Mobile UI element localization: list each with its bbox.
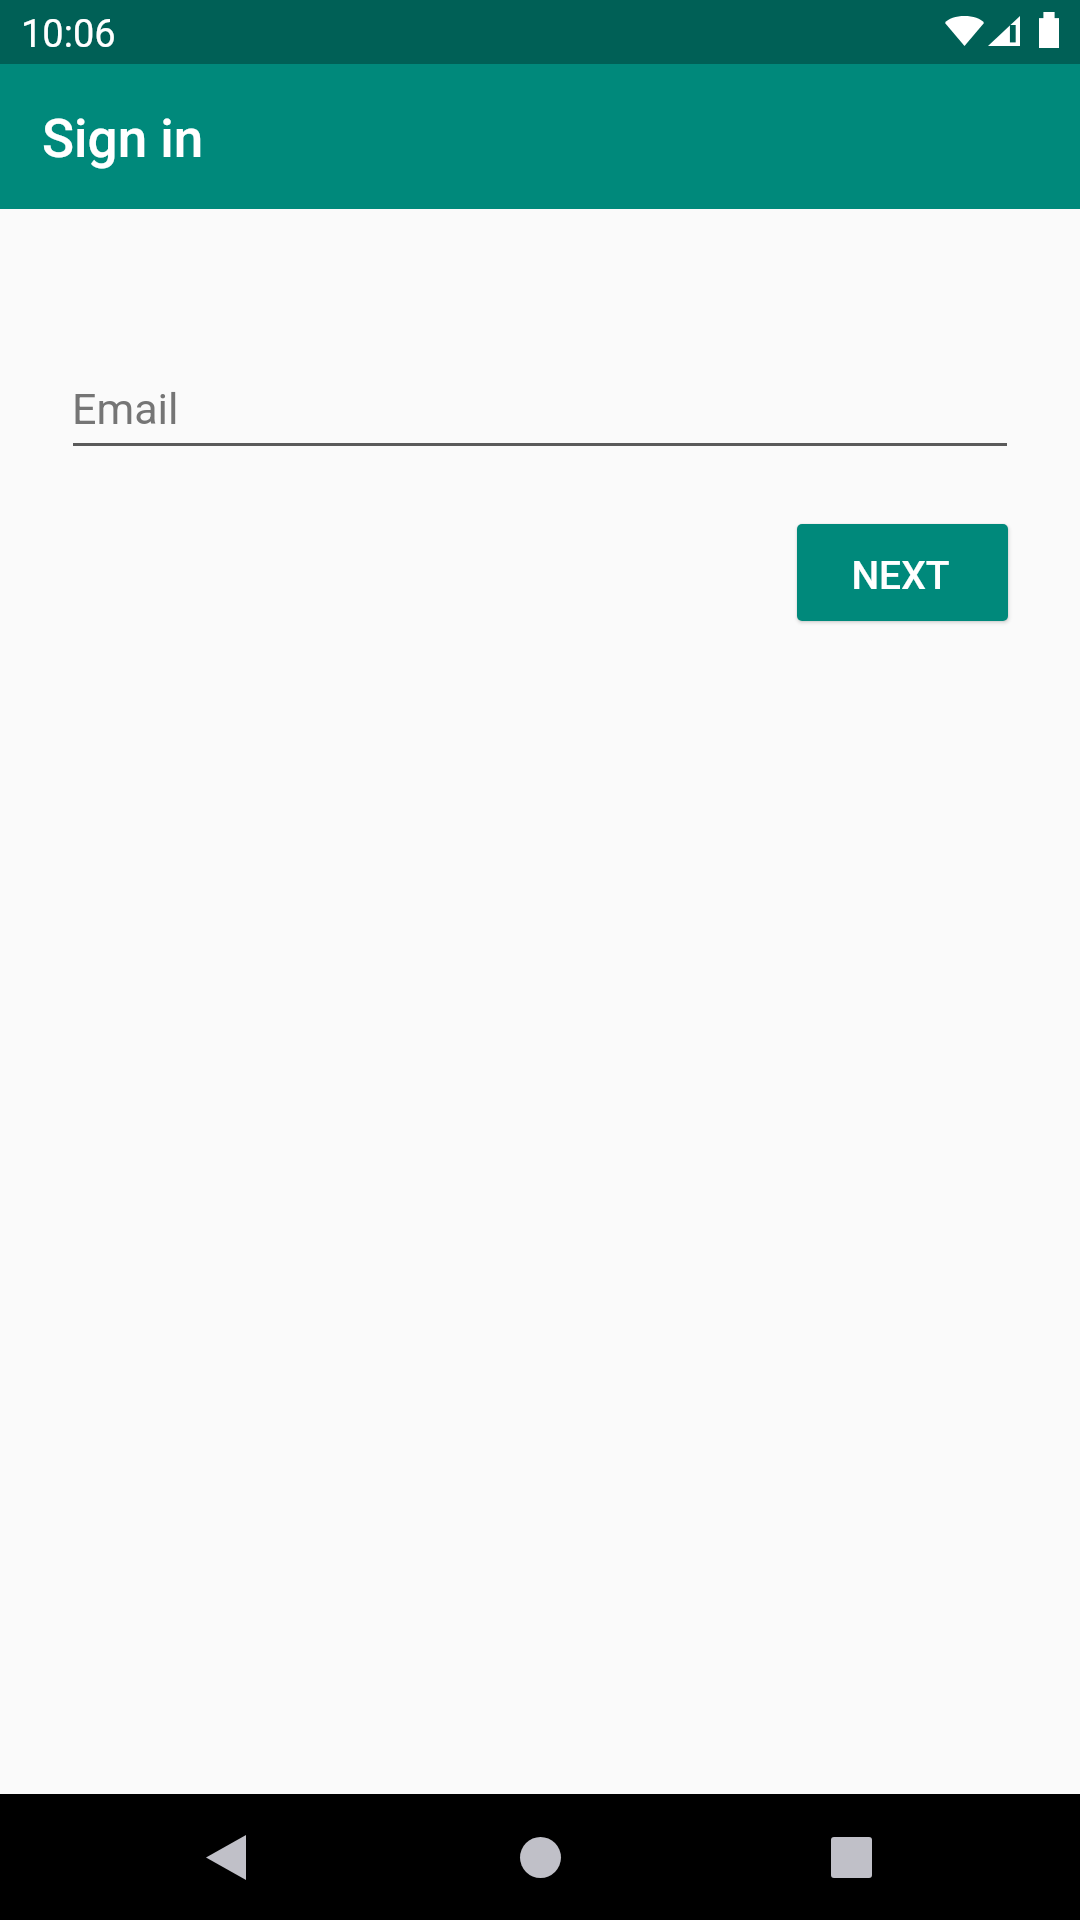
staticText: NEXT <box>851 553 950 599</box>
staticText: 10:06 <box>21 12 116 57</box>
button[interactable]: Recent apps <box>791 1794 911 1920</box>
button[interactable]: Home <box>480 1794 600 1920</box>
button[interactable]: NEXT <box>797 524 1008 621</box>
staticText: Sign in <box>42 108 204 170</box>
button[interactable]: Email <box>73 372 1007 446</box>
button[interactable]: Back <box>166 1794 286 1920</box>
staticText: Email <box>72 384 179 434</box>
